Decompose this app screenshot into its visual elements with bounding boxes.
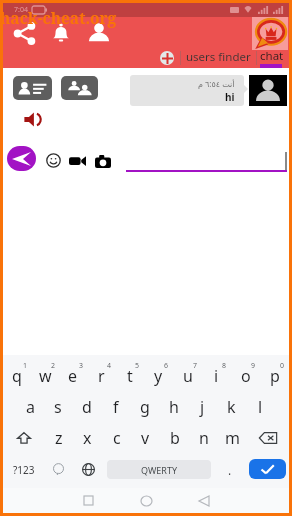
- button[interactable]: Language: [72, 454, 104, 485]
- staticText: 5: [135, 361, 140, 371]
- button[interactable]: Shift: [3, 422, 44, 454]
- button[interactable]: s: [44, 391, 72, 422]
- staticText: j: [200, 396, 205, 418]
- button[interactable]: x: [73, 422, 102, 454]
- button[interactable]: l: [246, 391, 275, 422]
- staticText: f: [113, 396, 119, 418]
- staticText: c: [113, 427, 121, 449]
- button[interactable]: Notifications: [46, 18, 76, 48]
- button[interactable]: v: [131, 422, 160, 454]
- staticText: e: [68, 365, 78, 387]
- button[interactable]: f: [101, 391, 130, 422]
- button[interactable]: Camera: [93, 151, 113, 171]
- button[interactable]: Backspace: [247, 422, 289, 454]
- button[interactable]: i: [202, 359, 231, 391]
- staticText: أنت ٦:٥٤ م: [198, 78, 235, 89]
- button[interactable]: Home: [127, 488, 165, 513]
- staticText: v: [141, 427, 150, 449]
- button[interactable]: u: [173, 359, 202, 391]
- button[interactable]: o: [231, 359, 260, 391]
- staticText: users finder: [186, 49, 251, 65]
- staticText: ?123: [13, 463, 35, 477]
- staticText: 9: [251, 361, 256, 371]
- button[interactable]: w: [31, 359, 59, 391]
- button[interactable]: h: [159, 391, 188, 422]
- staticText: chat: [260, 48, 284, 64]
- staticText: a: [26, 396, 35, 418]
- button[interactable]: Back: [185, 488, 223, 513]
- staticText: d: [82, 396, 92, 418]
- staticText: l: [258, 396, 263, 418]
- button[interactable]: r: [87, 359, 115, 391]
- button[interactable]: Emoji keyboard: [44, 454, 72, 485]
- staticText: b: [170, 427, 180, 449]
- button[interactable]: Add: [157, 48, 177, 68]
- button[interactable]: ?123: [3, 454, 44, 485]
- button[interactable]: users finder: [181, 47, 256, 68]
- button[interactable]: Emoji: [44, 151, 62, 169]
- button[interactable]: c: [102, 422, 131, 454]
- staticText: 3: [79, 361, 84, 371]
- button[interactable]: q: [3, 359, 31, 391]
- staticText: k: [227, 396, 236, 418]
- button[interactable]: Enter: [249, 459, 286, 479]
- button[interactable]: [123, 148, 287, 172]
- staticText: z: [55, 427, 63, 449]
- staticText: 7: [193, 361, 198, 371]
- staticText: r: [98, 365, 105, 387]
- staticText: hack-cheat.org: [0, 7, 117, 28]
- button[interactable]: Video: [67, 151, 87, 171]
- button[interactable]: m: [218, 422, 247, 454]
- button[interactable]: Profile: [84, 18, 114, 48]
- button[interactable]: Avatar: [249, 75, 287, 106]
- staticText: w: [39, 365, 52, 387]
- staticText: t: [127, 365, 133, 387]
- button[interactable]: t: [115, 359, 144, 391]
- staticText: hi: [225, 90, 235, 104]
- button[interactable]: QWERTY: [107, 460, 211, 479]
- button[interactable]: a: [16, 391, 44, 422]
- staticText: g: [140, 396, 150, 418]
- staticText: q: [12, 365, 22, 387]
- button[interactable]: z: [44, 422, 73, 454]
- button[interactable]: d: [72, 391, 101, 422]
- button[interactable]: Recents: [69, 488, 107, 513]
- staticText: 4: [107, 361, 112, 371]
- staticText: i: [214, 365, 219, 387]
- staticText: 2: [51, 361, 56, 371]
- button[interactable]: Share: [9, 18, 39, 48]
- staticText: 1: [23, 361, 28, 371]
- staticText: 7:04: [14, 5, 28, 15]
- button[interactable]: App logo: [252, 17, 288, 50]
- button[interactable]: e: [59, 359, 87, 391]
- staticText: u: [183, 365, 193, 387]
- button[interactable]: Sound: [22, 110, 44, 128]
- staticText: s: [54, 396, 62, 418]
- button[interactable]: b: [160, 422, 189, 454]
- staticText: h: [169, 396, 179, 418]
- button[interactable]: j: [188, 391, 217, 422]
- button[interactable]: k: [217, 391, 246, 422]
- button[interactable]: n: [189, 422, 218, 454]
- staticText: n: [199, 427, 209, 449]
- staticText: 6: [164, 361, 169, 371]
- staticText: 8: [222, 361, 227, 371]
- staticText: p: [270, 365, 280, 387]
- button[interactable]: chat: [257, 47, 287, 68]
- button[interactable]: Send: [7, 146, 36, 171]
- button[interactable]: p: [260, 359, 289, 391]
- staticText: x: [83, 427, 92, 449]
- button[interactable]: y: [144, 359, 173, 391]
- staticText: y: [154, 365, 163, 387]
- staticText: 0: [280, 361, 285, 371]
- staticText: .: [228, 462, 232, 478]
- button[interactable]: g: [130, 391, 159, 422]
- staticText: m: [225, 427, 240, 449]
- button[interactable]: Contact card: [13, 76, 52, 100]
- button[interactable]: أنت ٦:٥٤ م: [130, 75, 247, 106]
- button[interactable]: Group: [61, 76, 98, 100]
- staticText: QWERTY: [141, 464, 178, 476]
- button[interactable]: .: [214, 454, 246, 485]
- staticText: o: [241, 365, 251, 387]
